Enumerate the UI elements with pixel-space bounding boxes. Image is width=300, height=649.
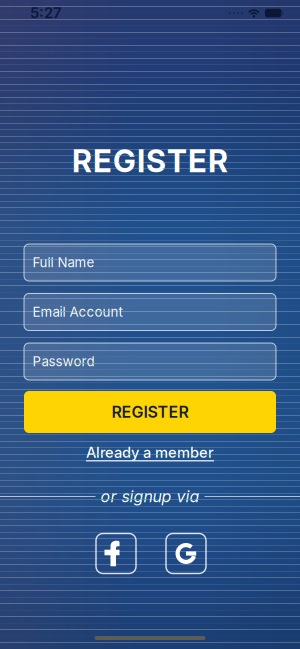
button[interactable]: Sign up with Facebook	[96, 533, 136, 573]
staticText: Email Account	[32, 304, 122, 320]
button[interactable]: Sign up with Google	[166, 533, 206, 573]
staticText: Password	[32, 354, 94, 369]
staticText: REGISTER	[111, 403, 188, 421]
button[interactable]: Email Account	[24, 293, 276, 330]
staticText: REGISTER	[72, 143, 228, 179]
staticText: or signup via	[100, 487, 199, 506]
button[interactable]: Already a member	[86, 443, 214, 461]
staticText: Full Name	[32, 255, 94, 270]
button[interactable]: Full Name	[24, 244, 276, 281]
button[interactable]: REGISTER	[24, 391, 276, 433]
staticText: Already a member	[86, 444, 214, 461]
staticText: 5:27	[30, 4, 61, 22]
button[interactable]: Password	[24, 343, 276, 380]
